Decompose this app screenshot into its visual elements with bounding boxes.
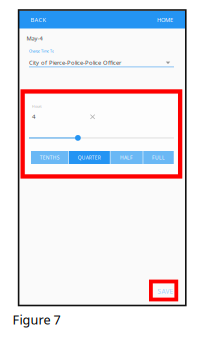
button[interactable]: HALF [110,151,143,164]
staticText: BACK [30,16,46,24]
staticText: 4 [32,112,36,120]
staticText: TENTHS [40,154,60,161]
staticText: FULL [152,154,165,161]
button[interactable]: Clear hours [90,114,95,119]
staticText: Figure 7 [13,311,61,328]
staticText: QUARTER [78,154,101,161]
staticText: City of Pierce-Police-Police Officer [29,59,121,66]
button[interactable]: QUARTER [69,151,110,164]
button[interactable]: SAVE [151,281,176,299]
button[interactable]: BACK [19,11,46,29]
staticText: SAVE [157,287,173,296]
staticText: HOME [157,16,173,24]
staticText: May-4 [26,34,42,42]
button[interactable]: HOME [157,11,186,29]
staticText: Charge Time To [29,49,54,53]
button[interactable]: FULL [143,151,174,164]
staticText: Hours [32,104,42,109]
staticText: HALF [120,154,133,161]
button[interactable]: TENTHS [31,151,68,164]
